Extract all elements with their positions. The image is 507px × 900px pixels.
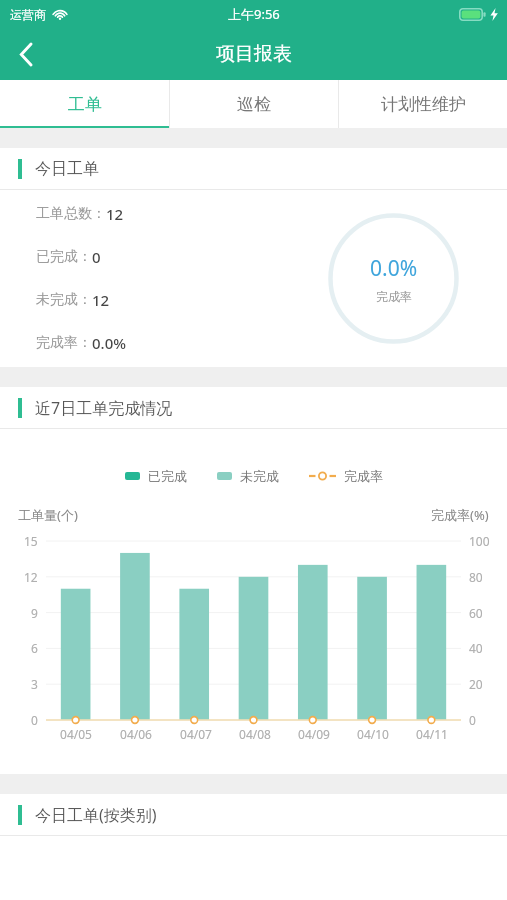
staticText: 上午9:56 — [228, 5, 280, 23]
button[interactable]: 巡检 — [170, 80, 338, 128]
staticText: 100 — [469, 533, 490, 549]
staticText: 计划性维护 — [381, 94, 466, 115]
staticText: 已完成： — [36, 248, 92, 266]
staticText: 0 — [469, 712, 476, 728]
staticText: 04/10 — [357, 726, 389, 742]
staticText: 12 — [92, 290, 110, 310]
staticText: 工单 — [68, 94, 102, 115]
staticText: 0.0% — [370, 254, 418, 283]
staticText: 0.0% — [92, 333, 127, 353]
staticText: 12 — [24, 569, 38, 585]
staticText: 完成率 — [344, 468, 383, 484]
staticText: 60 — [469, 605, 483, 621]
staticText: 完成率： — [36, 334, 92, 352]
staticText: 工单量(个) — [18, 506, 78, 524]
staticText: 未完成 — [240, 468, 279, 484]
button[interactable]: 工单 — [0, 80, 169, 128]
staticText: 近7日工单完成情况 — [35, 397, 173, 419]
staticText: 今日工单 — [35, 159, 99, 179]
staticText: 工单总数： — [36, 205, 106, 223]
staticText: 80 — [469, 569, 483, 585]
staticText: 已完成 — [148, 468, 187, 484]
staticText: 项目报表 — [216, 42, 292, 66]
staticText: 0 — [31, 712, 38, 728]
staticText: 04/05 — [60, 726, 92, 742]
staticText: 04/07 — [180, 726, 212, 742]
staticText: 巡检 — [237, 94, 271, 115]
staticText: 04/11 — [416, 726, 448, 742]
staticText: 今日工单(按类别) — [35, 804, 157, 826]
staticText: 15 — [24, 533, 38, 549]
staticText: 3 — [31, 676, 38, 692]
staticText: 40 — [469, 640, 483, 656]
staticText: 未完成： — [36, 291, 92, 309]
staticText: 12 — [106, 204, 124, 224]
staticText: 完成率 — [376, 289, 412, 304]
staticText: 04/08 — [239, 726, 271, 742]
staticText: 6 — [31, 640, 38, 656]
staticText: 完成率(%) — [431, 506, 489, 524]
staticText: 0 — [92, 247, 101, 267]
button[interactable]: Back — [0, 28, 52, 80]
staticText: 04/06 — [120, 726, 152, 742]
staticText: 20 — [469, 676, 483, 692]
staticText: 运营商 — [10, 7, 46, 22]
button[interactable]: 计划性维护 — [339, 80, 507, 128]
staticText: 9 — [31, 605, 38, 621]
staticText: 04/09 — [298, 726, 330, 742]
